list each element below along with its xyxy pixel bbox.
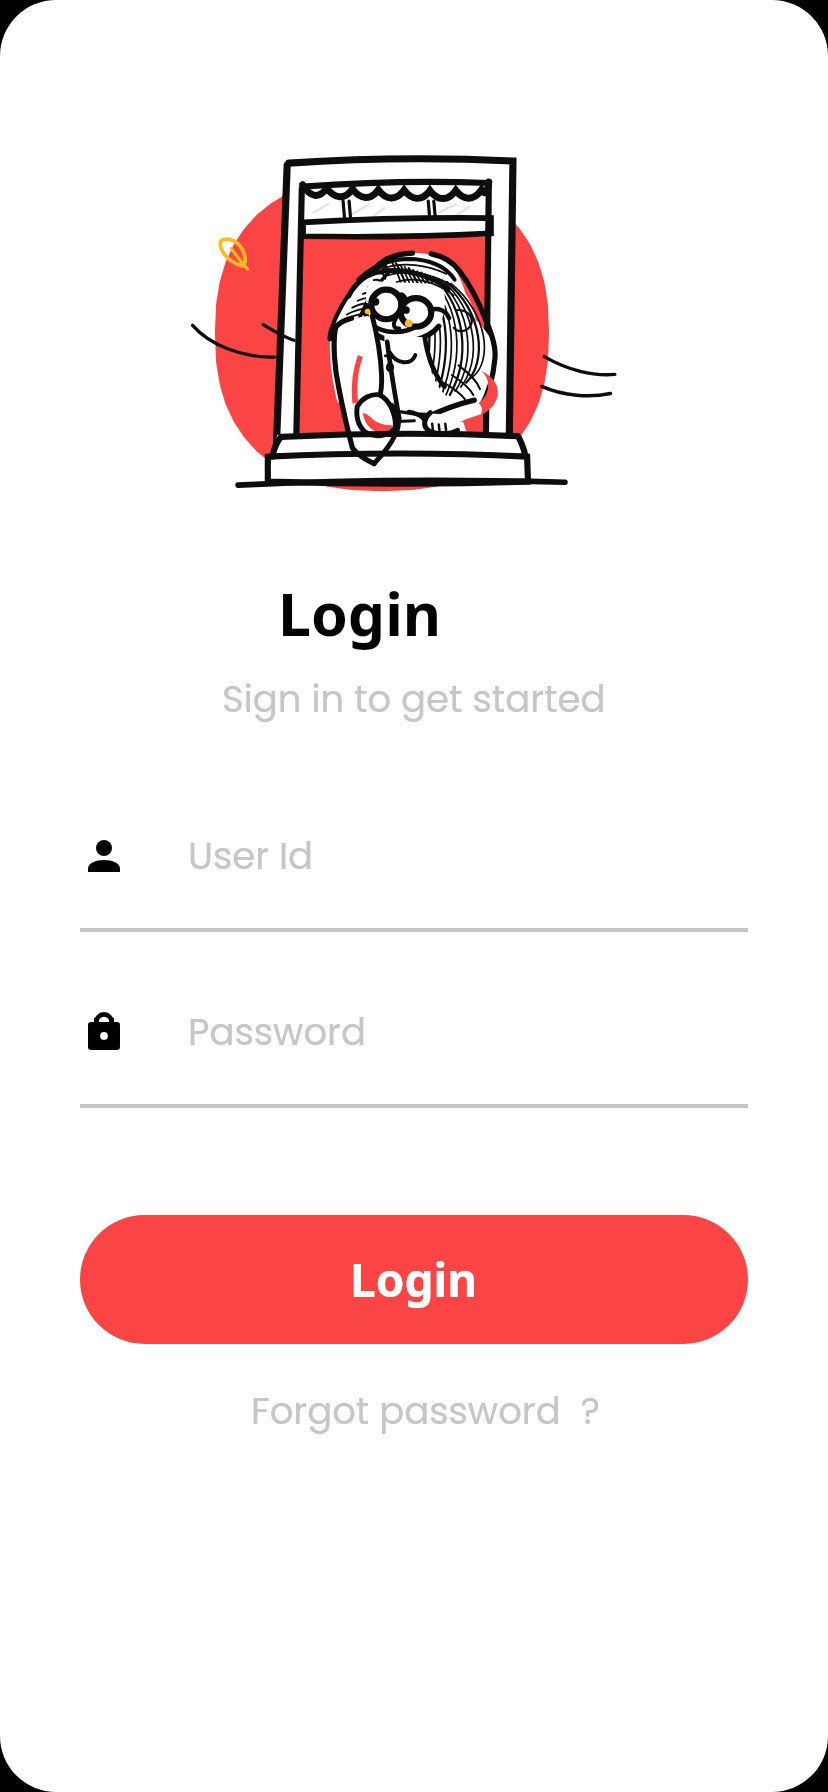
button[interactable]: Login: [80, 1215, 748, 1344]
staticText: User Id: [188, 830, 314, 882]
staticText: Sign in to get started: [222, 673, 606, 725]
other: Password: [88, 1008, 120, 1050]
staticText: Password: [188, 1006, 366, 1058]
staticText: Forgot password ?: [251, 1385, 600, 1437]
other: User Id: [88, 840, 120, 872]
button[interactable]: Password: [0, 994, 828, 1108]
button[interactable]: User Id: [0, 818, 828, 932]
button[interactable]: Forgot password ?: [241, 1379, 610, 1443]
staticText: Login: [278, 573, 442, 653]
staticText: Login: [350, 1248, 478, 1311]
